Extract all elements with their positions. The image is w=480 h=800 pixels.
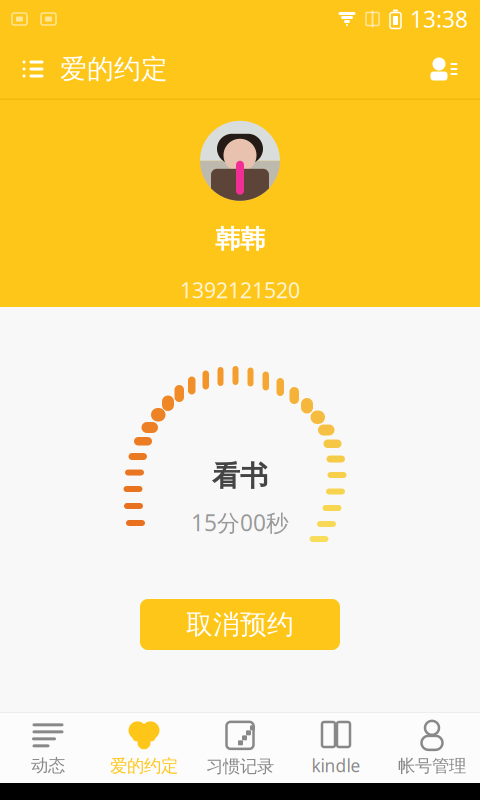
staticText: 13:38 xyxy=(410,4,468,34)
staticText: 动态 xyxy=(31,755,65,776)
staticText: 15分00秒 xyxy=(191,507,289,537)
button[interactable]: kindle xyxy=(288,712,384,783)
staticText: 取消预约 xyxy=(186,608,294,641)
button[interactable]: Menu xyxy=(14,47,52,90)
button[interactable]: 爱的约定 xyxy=(96,712,192,783)
staticText: kindle xyxy=(311,754,360,777)
staticText: 爱的约定 xyxy=(60,53,168,85)
staticText: 1392121520 xyxy=(180,276,300,304)
button[interactable]: 习惯记录 xyxy=(192,712,288,783)
staticText: 帐号管理 xyxy=(398,755,466,777)
button[interactable]: Contact xyxy=(422,47,466,91)
staticText: 看书 xyxy=(212,459,268,493)
button[interactable]: Profile photo xyxy=(200,121,280,201)
button[interactable]: 动态 xyxy=(0,712,96,783)
staticText: 爱的约定 xyxy=(110,755,178,777)
button[interactable]: 帐号管理 xyxy=(384,712,480,783)
staticText: 习惯记录 xyxy=(206,756,274,777)
staticText: 韩韩 xyxy=(215,224,265,255)
button[interactable]: 取消预约 xyxy=(140,599,340,650)
